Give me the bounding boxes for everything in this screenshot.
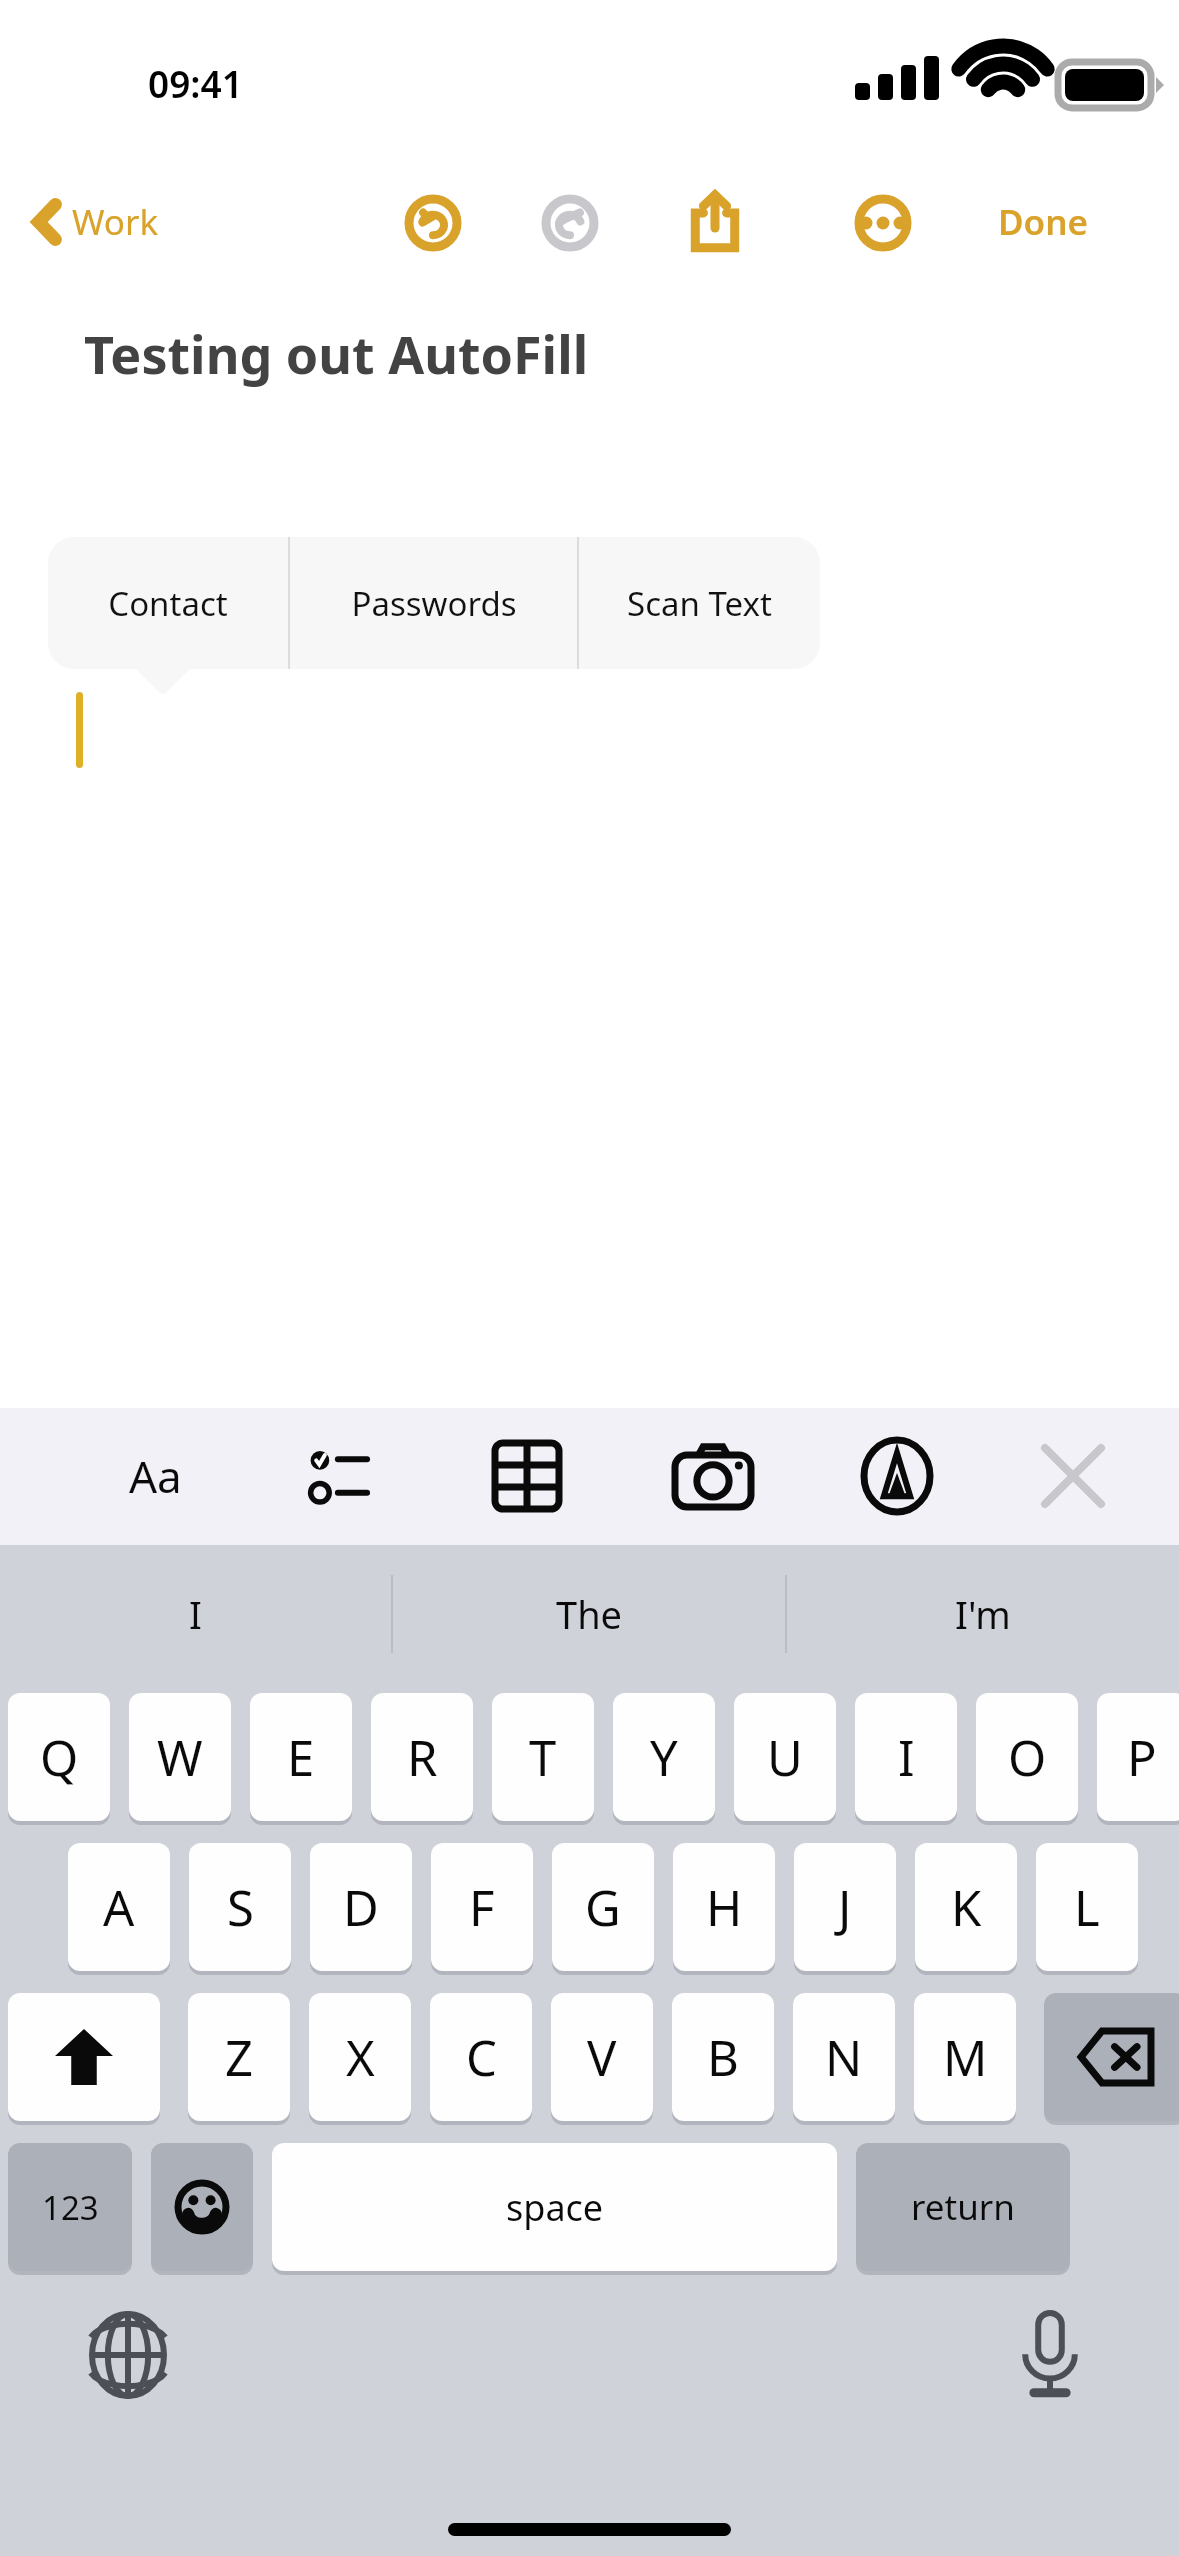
button[interactable]: P — [1097, 1693, 1179, 1821]
staticText: I'm — [955, 1588, 1011, 1640]
button[interactable] — [151, 2143, 253, 2271]
staticText: return — [911, 2183, 1015, 2231]
staticText: Z — [225, 2024, 254, 2091]
staticText: I — [189, 1588, 202, 1640]
button[interactable]: A — [68, 1843, 170, 1971]
staticText: G — [585, 1874, 621, 1941]
staticText: X — [346, 2024, 375, 2091]
staticText: 09:41 — [148, 58, 243, 108]
staticText: W — [157, 1724, 203, 1791]
staticText: F — [469, 1874, 495, 1941]
button[interactable]: D — [310, 1843, 412, 1971]
button[interactable]: More — [850, 190, 916, 256]
staticText: Work — [72, 198, 159, 246]
button[interactable]: I — [0, 1545, 391, 1682]
button[interactable]: Text format — [110, 1436, 200, 1516]
staticText: M — [943, 2024, 988, 2091]
staticText: D — [343, 1874, 379, 1941]
staticText: Passwords — [351, 581, 517, 626]
staticText: C — [466, 2024, 497, 2091]
button[interactable]: Close keyboard — [1030, 1436, 1116, 1516]
staticText: J — [838, 1874, 852, 1941]
button[interactable] — [1044, 1993, 1179, 2121]
staticText: N — [825, 2024, 863, 2091]
staticText: K — [951, 1874, 982, 1941]
button[interactable]: Z — [188, 1993, 290, 2121]
staticText: I — [898, 1724, 915, 1791]
button[interactable]: Contact — [48, 537, 288, 669]
button[interactable]: I — [855, 1693, 957, 1821]
button[interactable]: T — [492, 1693, 594, 1821]
button[interactable]: Scan Text — [579, 537, 820, 669]
button[interactable]: L — [1036, 1843, 1138, 1971]
button[interactable]: The — [393, 1545, 785, 1682]
button[interactable]: Redo — [537, 190, 603, 256]
staticText: Scan Text — [627, 581, 772, 626]
staticText: Q — [40, 1724, 79, 1791]
staticText: E — [287, 1724, 315, 1791]
other: Shift — [8, 1993, 160, 2125]
button[interactable]: K — [915, 1843, 1017, 1971]
button[interactable]: N — [793, 1993, 895, 2121]
button[interactable]: Done — [990, 190, 1097, 254]
staticText: The — [556, 1588, 623, 1640]
button[interactable]: Markup — [852, 1432, 942, 1520]
button[interactable]: Checklist — [296, 1436, 386, 1516]
button[interactable]: S — [189, 1843, 291, 1971]
button[interactable]: O — [976, 1693, 1078, 1821]
staticText: V — [587, 2024, 617, 2091]
button[interactable] — [8, 1993, 160, 2121]
button[interactable]: Q — [8, 1693, 110, 1821]
button[interactable]: Table — [482, 1434, 572, 1518]
button[interactable]: C — [430, 1993, 532, 2121]
button[interactable]: G — [552, 1843, 654, 1971]
button[interactable]: J — [794, 1843, 896, 1971]
staticText: R — [407, 1724, 438, 1791]
button[interactable]: V — [551, 1993, 653, 2121]
staticText: Testing out AutoFill — [84, 318, 589, 389]
button[interactable]: I'm — [787, 1545, 1179, 1682]
button[interactable]: F — [431, 1843, 533, 1971]
button[interactable]: X — [309, 1993, 411, 2121]
button[interactable]: Camera — [665, 1436, 761, 1516]
staticText: L — [1074, 1874, 1100, 1941]
button[interactable]: E — [250, 1693, 352, 1821]
staticText: Done — [998, 198, 1089, 246]
staticText: B — [707, 2024, 739, 2091]
staticText: Contact — [108, 581, 228, 626]
button[interactable]: Passwords — [290, 537, 577, 669]
button[interactable]: Dictation — [1000, 2305, 1100, 2405]
button[interactable]: B — [672, 1993, 774, 2121]
other: Emoji — [151, 2143, 253, 2275]
button[interactable]: Undo — [400, 190, 466, 256]
staticText: H — [706, 1874, 743, 1941]
button[interactable]: M — [914, 1993, 1016, 2121]
staticText: space — [506, 2183, 604, 2232]
button[interactable]: Work — [24, 188, 167, 256]
staticText: S — [227, 1874, 254, 1941]
button[interactable]: Share — [680, 186, 750, 256]
button[interactable]: Y — [613, 1693, 715, 1821]
button[interactable]: return — [856, 2143, 1070, 2271]
button[interactable]: space — [272, 2143, 837, 2271]
staticText: T — [529, 1724, 557, 1791]
staticText: P — [1127, 1724, 1157, 1791]
button[interactable]: U — [734, 1693, 836, 1821]
button[interactable]: 123 — [8, 2143, 132, 2271]
button[interactable]: R — [371, 1693, 473, 1821]
staticText: U — [767, 1724, 803, 1791]
other: Backspace — [1044, 1993, 1179, 2125]
staticText: Y — [650, 1724, 678, 1791]
staticText: O — [1008, 1724, 1047, 1791]
staticText: Aa — [129, 1446, 182, 1506]
staticText: A — [103, 1874, 135, 1941]
staticText: 123 — [42, 2185, 99, 2230]
button[interactable]: W — [129, 1693, 231, 1821]
button[interactable]: H — [673, 1843, 775, 1971]
button[interactable]: Change keyboard — [78, 2305, 178, 2405]
